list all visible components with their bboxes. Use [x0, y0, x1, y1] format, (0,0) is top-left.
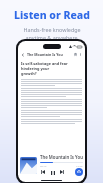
staticText: 12:48: [76, 164, 83, 167]
button[interactable]: Next: [59, 169, 65, 175]
staticText: The Mountain Is You: [27, 52, 63, 57]
staticText: Is self-sabotage and fear hindering your: [21, 61, 82, 71]
other: Back: [21, 53, 25, 57]
staticText: growth?: [21, 71, 37, 76]
staticText: Hands-free knowledge: [23, 26, 81, 33]
staticText: anytime & anywhere: [25, 34, 78, 41]
button[interactable]: Pause: [49, 169, 56, 176]
staticText: Listen or Read: [14, 8, 90, 22]
button[interactable]: Back: [21, 51, 82, 58]
button[interactable]: Listen mode: [75, 168, 83, 176]
other: More options: [79, 53, 82, 56]
button[interactable]: Previous: [40, 169, 46, 175]
button[interactable]: Album art: [20, 157, 37, 174]
staticText: The Mountain Is You: [40, 154, 83, 160]
other: Bookmark: [74, 53, 77, 56]
staticText: 00:12: [40, 164, 47, 167]
